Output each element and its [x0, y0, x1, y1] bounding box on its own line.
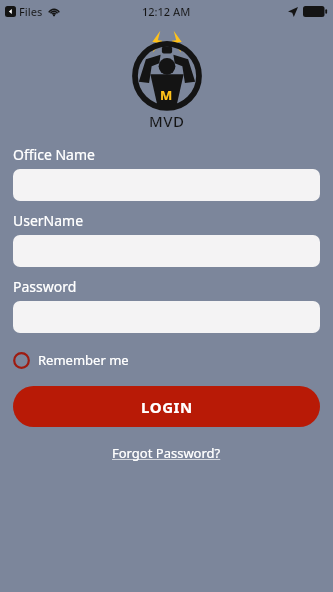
staticText: Remember me — [38, 351, 129, 369]
staticText: 12:12 AM — [142, 4, 191, 19]
staticText: LOGIN — [141, 397, 193, 417]
staticText: Office Name — [13, 145, 95, 164]
staticText: UserName — [13, 211, 84, 230]
staticText: MVD — [149, 111, 185, 131]
button[interactable] — [13, 235, 320, 267]
button[interactable]: LOGIN — [13, 386, 320, 427]
staticText: M — [160, 86, 173, 104]
staticText: Forgot Password? — [112, 444, 221, 462]
button[interactable]: Remember me — [13, 351, 129, 369]
button[interactable] — [13, 301, 320, 333]
staticText: Files — [19, 4, 43, 19]
staticText: Password — [13, 277, 77, 296]
button[interactable] — [13, 169, 320, 201]
button[interactable]: Forgot Password? — [112, 444, 221, 462]
